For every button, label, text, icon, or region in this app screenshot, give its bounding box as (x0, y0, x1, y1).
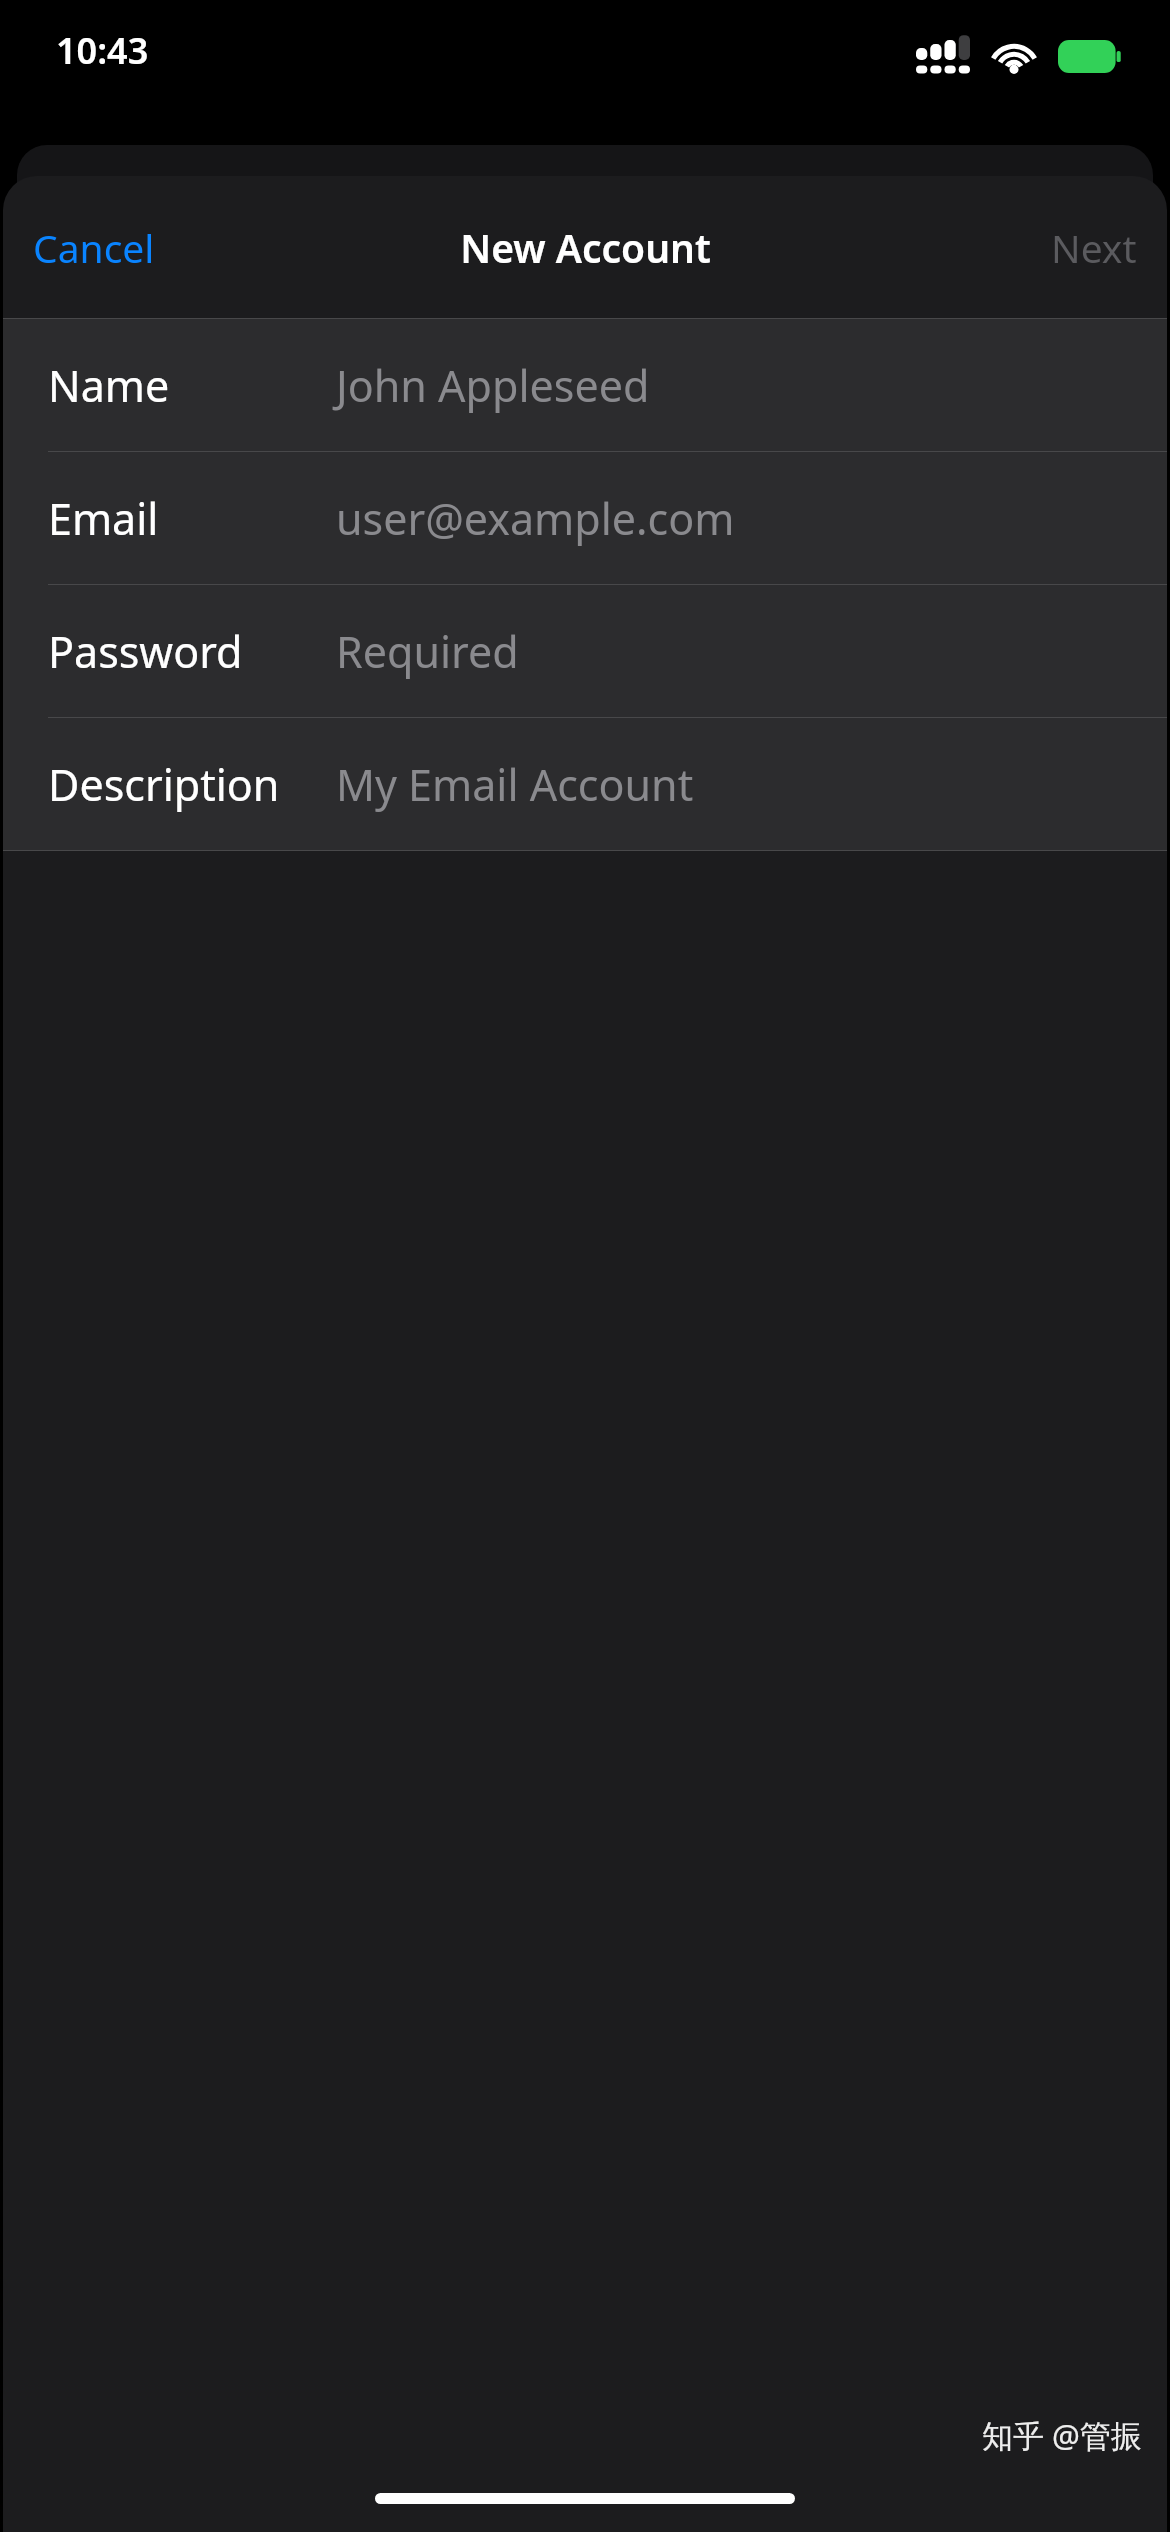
button[interactable]: Cancel (15, 207, 173, 288)
staticText: Email (48, 489, 336, 548)
staticText: user@example.com (336, 489, 735, 548)
staticText: Description (48, 755, 336, 814)
button[interactable]: Name (3, 319, 1167, 451)
staticText: Required (336, 622, 519, 681)
staticText: Name (48, 356, 336, 415)
staticText: Password (48, 622, 336, 681)
staticText: New Account (460, 221, 711, 274)
staticText: Next (1051, 221, 1137, 274)
button[interactable]: Password (3, 585, 1167, 717)
staticText: John Appleseed (336, 356, 650, 415)
button[interactable]: Next (1033, 207, 1155, 288)
staticText: My Email Account (336, 755, 694, 814)
staticText: 知乎 @管振 (982, 2414, 1142, 2456)
staticText: Cancel (33, 221, 155, 274)
staticText: 10:43 (56, 26, 149, 75)
button[interactable]: Description (3, 718, 1167, 850)
button[interactable]: Email (3, 452, 1167, 584)
